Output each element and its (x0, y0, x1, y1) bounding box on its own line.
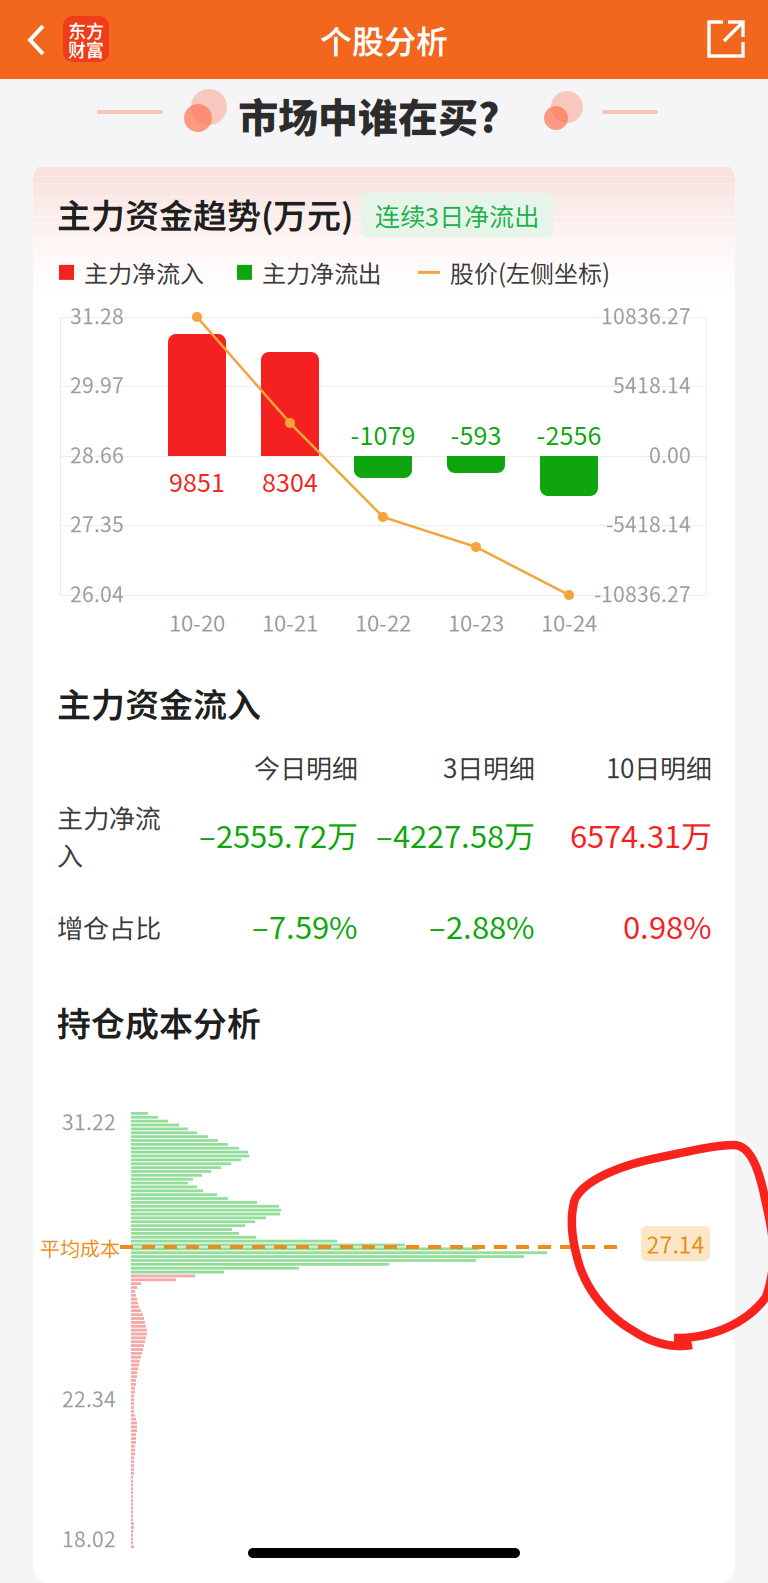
staticText: 0.00 (649, 439, 691, 469)
staticText: 10-22 (355, 606, 411, 638)
staticText: 今日明细 (254, 748, 358, 786)
staticText: 财富 (68, 36, 104, 62)
staticText: –2555.72万 (199, 812, 358, 857)
staticText: 3日明细 (443, 748, 535, 786)
staticText: -5418.14 (606, 508, 691, 538)
staticText: -10836.27 (594, 578, 691, 608)
staticText: 主力资金流入 (57, 678, 261, 727)
staticText: 8304 (262, 463, 318, 499)
staticText: 10836.27 (601, 300, 691, 330)
staticText: 10-23 (448, 606, 504, 638)
staticText: 27.35 (70, 508, 124, 538)
staticText: -593 (450, 416, 501, 452)
staticText: 27.14 (646, 1227, 704, 1260)
staticText: 东方 (68, 17, 104, 43)
staticText: 平均成本 (40, 1233, 120, 1262)
staticText: -1079 (350, 416, 415, 452)
staticText: 增仓占比 (57, 908, 161, 946)
staticText: 主力净流入 (74, 255, 204, 290)
button[interactable]: Share (684, 0, 768, 78)
staticText: -2556 (536, 416, 601, 452)
staticText: 主力净流出 (252, 255, 382, 290)
staticText: 股价(左侧坐标) (440, 255, 610, 290)
staticText: 持仓成本分析 (57, 997, 261, 1046)
staticText: 10-21 (262, 606, 318, 638)
staticText: 18.02 (62, 1523, 116, 1553)
staticText: 主力净流入 (57, 798, 161, 873)
staticText: 9851 (169, 463, 225, 499)
staticText: 28.66 (70, 439, 124, 469)
staticText: –7.59% (252, 903, 358, 948)
staticText: –2.88% (429, 903, 535, 948)
staticText: 0.98% (623, 903, 712, 948)
staticText: 主力资金趋势(万元) (57, 189, 353, 238)
staticText: 5418.14 (613, 369, 691, 399)
staticText: 31.22 (62, 1106, 116, 1136)
staticText: 连续3日净流出 (375, 197, 539, 233)
staticText: 29.97 (70, 369, 124, 399)
staticText: 10日明细 (606, 748, 712, 786)
staticText: 22.34 (62, 1383, 116, 1413)
staticText: 6574.31万 (570, 812, 712, 857)
staticText: 26.04 (70, 578, 124, 608)
staticText: 个股分析 (320, 16, 448, 63)
staticText: 市场中谁在买? (238, 86, 499, 144)
staticText: 31.28 (70, 300, 124, 330)
button[interactable]: Back (0, 0, 123, 78)
staticText: 10-20 (169, 606, 225, 638)
staticText: –4227.58万 (376, 812, 535, 857)
staticText: 10-24 (541, 606, 597, 638)
